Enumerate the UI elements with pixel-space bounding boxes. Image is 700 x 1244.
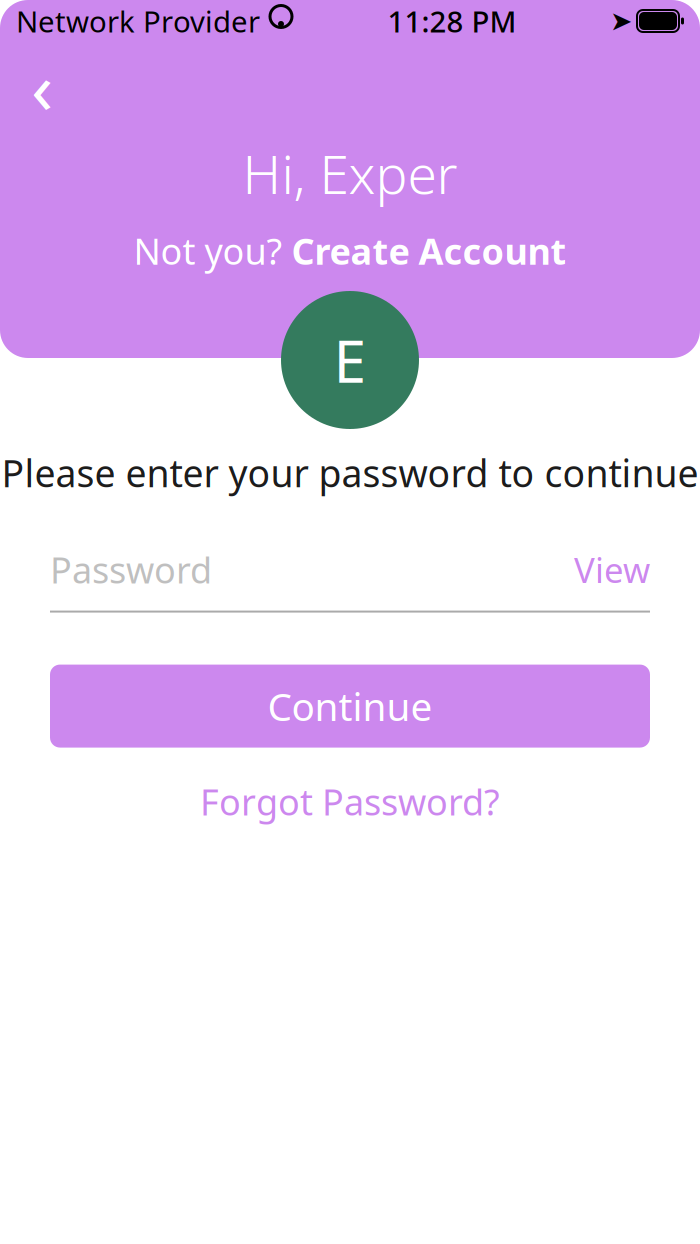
staticText: Hi, Exper xyxy=(242,138,457,209)
staticText: Please enter your password to continue xyxy=(1,448,698,498)
button[interactable]: Back xyxy=(14,58,70,114)
staticText: ➤ xyxy=(610,6,632,36)
staticText: Create Account xyxy=(291,227,566,275)
staticText: View xyxy=(574,547,650,593)
staticText: E xyxy=(333,321,366,399)
staticText: Continue xyxy=(267,680,432,732)
staticText: Password xyxy=(50,546,212,593)
button[interactable]: View xyxy=(574,547,650,593)
staticText: 11:28 PM xyxy=(387,1,516,40)
staticText: Network Provider xyxy=(16,1,260,40)
staticText: Forgot Password? xyxy=(200,778,500,825)
button[interactable]: Not you? xyxy=(133,227,566,275)
staticText: Not you? xyxy=(133,227,291,275)
button[interactable]: Forgot Password? xyxy=(200,780,500,824)
staticText: ‹ xyxy=(31,38,53,134)
button[interactable]: Continue xyxy=(50,665,650,748)
staticText xyxy=(632,9,637,33)
